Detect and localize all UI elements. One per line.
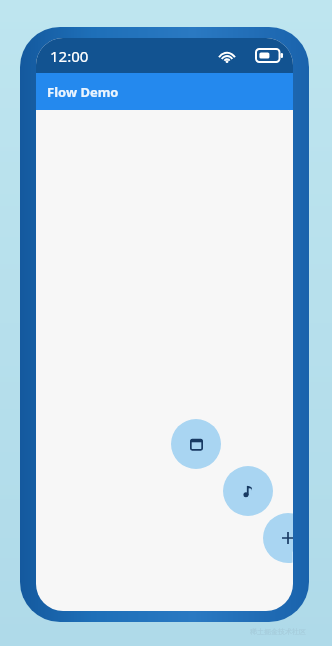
staticText: 稀土掘金技术社区 <box>250 627 306 636</box>
button[interactable]: Music <box>223 466 273 516</box>
staticText: Flow Demo <box>47 83 119 101</box>
button[interactable]: Flow Demo <box>36 73 293 110</box>
button[interactable]: Calendar <box>171 419 221 469</box>
staticText: 12:00 <box>50 46 89 66</box>
button[interactable]: Add <box>263 513 293 563</box>
